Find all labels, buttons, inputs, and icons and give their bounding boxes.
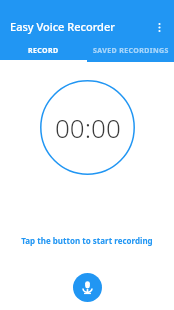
- staticText: Tap the button to start recording: [0, 235, 174, 246]
- staticText: SAVED RECORDINGS: [93, 46, 169, 56]
- button[interactable]: More options: [147, 15, 171, 39]
- staticText: Easy Voice Recorder: [10, 19, 115, 34]
- button[interactable]: SAVED RECORDINGS: [87, 40, 174, 62]
- button[interactable]: RECORD: [0, 40, 87, 62]
- staticText: 00:00: [55, 110, 121, 145]
- button[interactable]: Start recording: [73, 273, 102, 302]
- staticText: RECORD: [28, 46, 59, 56]
